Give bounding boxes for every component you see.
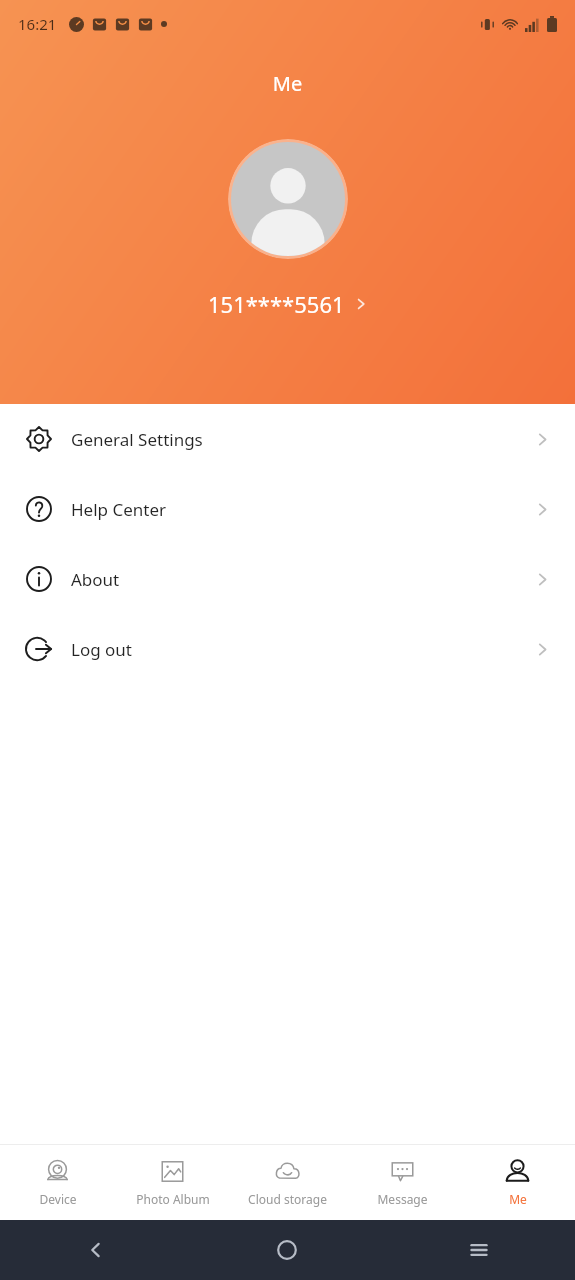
button[interactable]: Message [345, 1145, 460, 1220]
button[interactable]: Profile picture [228, 139, 348, 259]
staticText: Photo Album [136, 1191, 210, 1207]
staticText: Me [0, 70, 575, 97]
staticText: 16:21 [18, 14, 57, 34]
staticText: 151****5561 [208, 289, 345, 319]
button[interactable]: About [0, 544, 575, 614]
staticText: Help Center [71, 498, 167, 521]
staticText: Me [509, 1191, 527, 1207]
staticText: Cloud storage [248, 1191, 327, 1207]
button[interactable]: Photo Album [115, 1145, 230, 1220]
button[interactable]: Cloud storage [230, 1145, 345, 1220]
staticText: Log out [71, 638, 132, 661]
button[interactable]: Recent apps [383, 1220, 575, 1280]
button[interactable]: Home [191, 1220, 383, 1280]
staticText: Device [39, 1191, 77, 1207]
staticText: About [71, 568, 120, 591]
staticText: Message [377, 1191, 428, 1207]
button[interactable]: Log out [0, 614, 575, 684]
staticText: General Settings [71, 428, 203, 451]
button[interactable]: Help Center [0, 474, 575, 544]
button[interactable]: 151****5561 [208, 289, 368, 319]
button[interactable]: Me [460, 1145, 575, 1220]
button[interactable]: Device [0, 1145, 115, 1220]
button[interactable]: General Settings [0, 404, 575, 474]
button[interactable]: Back [0, 1220, 191, 1280]
